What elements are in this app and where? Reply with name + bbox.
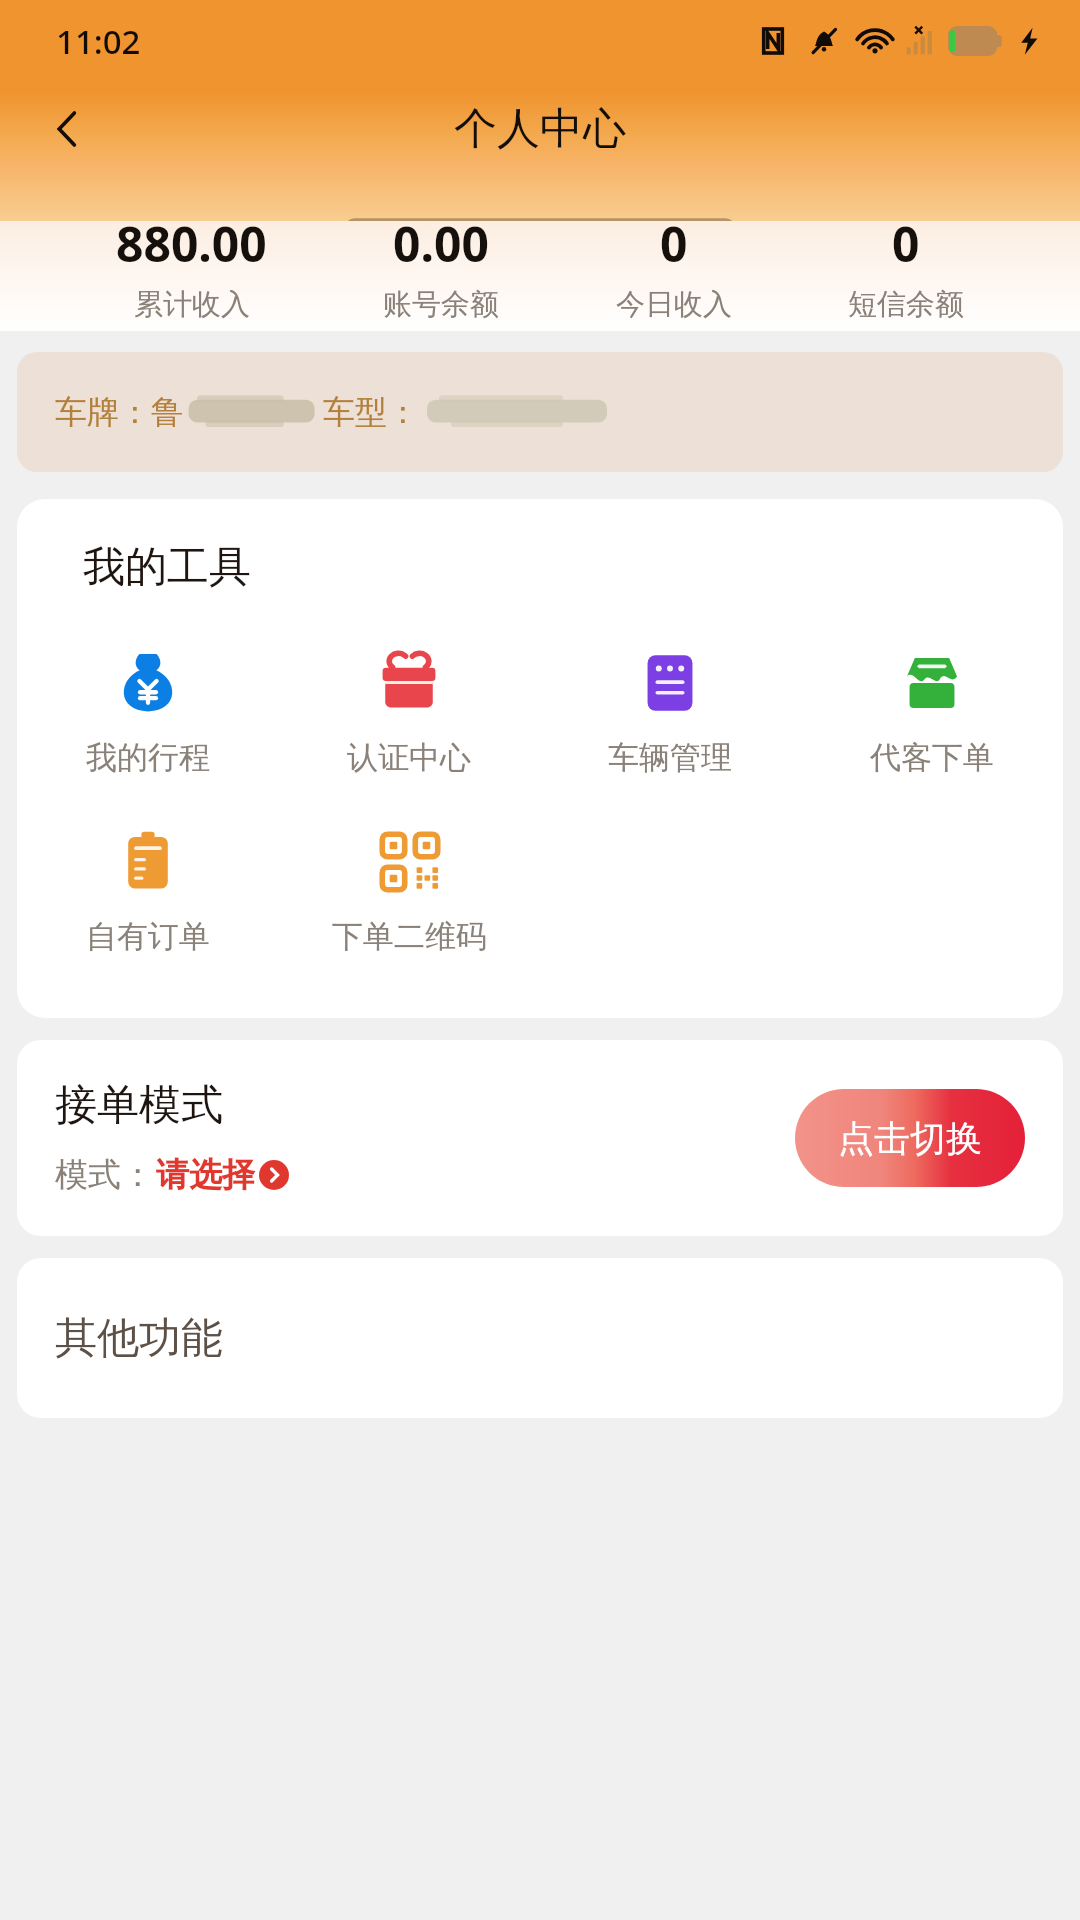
button[interactable]: 自有订单 bbox=[76, 825, 220, 960]
button[interactable]: 已实名 > bbox=[278, 292, 1080, 331]
button[interactable]: 认证中心 bbox=[337, 646, 481, 781]
button[interactable]: 请选择 bbox=[154, 1152, 291, 1198]
staticText: 11:02 bbox=[56, 19, 141, 64]
staticText: 其他功能 bbox=[55, 1312, 223, 1365]
staticText: 已实名 > bbox=[623, 292, 735, 331]
staticText: 0.00 bbox=[393, 211, 489, 276]
staticText: 今日收入 bbox=[616, 286, 732, 323]
staticText: 模式： bbox=[55, 1154, 154, 1196]
button[interactable]: 代客下单 bbox=[860, 646, 1004, 781]
staticText: 我的工具 bbox=[83, 541, 251, 594]
staticText: 下单二维码 bbox=[332, 917, 487, 956]
staticText: 请选择 bbox=[156, 1154, 255, 1196]
staticText: 车型： bbox=[323, 392, 419, 432]
staticText: 代客下单 bbox=[870, 738, 994, 777]
button[interactable]: 我的行程 bbox=[76, 646, 220, 781]
staticText: 个人中心 bbox=[454, 102, 626, 156]
staticText: 接单模式 bbox=[55, 1079, 223, 1132]
button[interactable]: Te bbox=[0, 292, 262, 331]
staticText: 自有订单 bbox=[86, 917, 210, 956]
staticText: 点击切换 bbox=[838, 1116, 982, 1161]
staticText: 累计收入 bbox=[134, 286, 250, 323]
button[interactable]: Back bbox=[34, 95, 102, 163]
button[interactable]: 车牌：鲁 bbox=[17, 352, 1063, 472]
staticText: 我的行程 bbox=[86, 738, 210, 777]
staticText: 0 bbox=[892, 211, 920, 276]
staticText: 短信余额 bbox=[848, 286, 964, 323]
button[interactable]: 车辆管理 bbox=[598, 646, 742, 781]
staticText: 0 bbox=[660, 211, 688, 276]
button[interactable]: 点击切换 bbox=[795, 1089, 1025, 1187]
staticText: 880.00 bbox=[116, 211, 267, 276]
button[interactable]: 下单二维码 bbox=[322, 825, 497, 960]
staticText: Te bbox=[26, 292, 57, 331]
staticText: 账号余额 bbox=[383, 286, 499, 323]
staticText: 车牌：鲁 bbox=[55, 392, 183, 432]
staticText: 车辆管理 bbox=[608, 738, 732, 777]
staticText: 认证中心 bbox=[347, 738, 471, 777]
